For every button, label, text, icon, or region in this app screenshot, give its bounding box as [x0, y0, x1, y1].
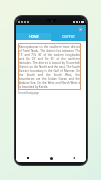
button[interactable]: Back: [71, 155, 77, 161]
staticText: OUTPUT: [62, 35, 75, 39]
button[interactable]: Recent apps: [25, 155, 31, 161]
staticText: Kanniyakumari is the southern most distr…: [19, 45, 80, 89]
staticText: Second language: [18, 91, 40, 95]
button[interactable]: HOME: [16, 33, 51, 40]
button[interactable]: Home: [48, 155, 54, 161]
staticText: HOME: [29, 35, 39, 39]
button[interactable]: Kanniyakumari is the southern most distr…: [18, 43, 81, 90]
button[interactable]: Stop: [78, 27, 83, 32]
button[interactable]: OUTPUT: [51, 33, 86, 40]
